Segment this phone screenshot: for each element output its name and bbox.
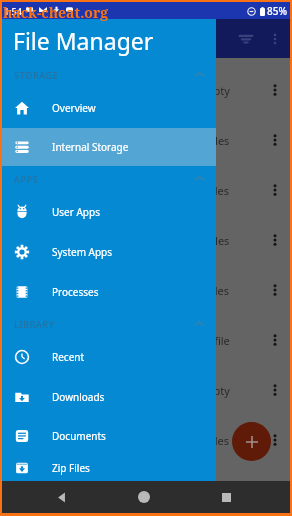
staticText: Internal Storage bbox=[52, 140, 129, 154]
button[interactable]: Alarms bbox=[2, 65, 290, 115]
button[interactable]: More options bbox=[262, 227, 288, 253]
button[interactable]: Internal Storage bbox=[2, 128, 216, 166]
staticText: Download bbox=[52, 282, 199, 298]
button[interactable]: STORAGE bbox=[2, 62, 216, 88]
button[interactable]: Add bbox=[232, 422, 271, 461]
staticText: Pictures bbox=[52, 432, 199, 448]
button[interactable]: Zip Files bbox=[2, 455, 216, 481]
button[interactable]: Overview bbox=[2, 88, 216, 128]
staticText: 22 files bbox=[193, 233, 230, 248]
button[interactable]: More options bbox=[262, 427, 288, 453]
staticText: Processes bbox=[52, 285, 99, 299]
staticText: Recent bbox=[52, 350, 85, 364]
staticText: 9 files bbox=[199, 283, 230, 298]
button[interactable]: Android bbox=[2, 115, 290, 165]
button[interactable]: More options bbox=[261, 25, 289, 53]
staticText: 13 files bbox=[193, 133, 230, 148]
staticText: Documents bbox=[52, 429, 106, 443]
staticText: Music bbox=[52, 382, 197, 398]
staticText: Zip Files bbox=[52, 461, 90, 475]
staticText: System Apps bbox=[52, 245, 113, 259]
staticText: Overview bbox=[52, 101, 96, 115]
staticText: 1:54 bbox=[4, 5, 22, 17]
button[interactable]: Home bbox=[127, 481, 161, 513]
button[interactable]: User Apps bbox=[2, 192, 216, 232]
button[interactable]: System Apps bbox=[2, 232, 216, 272]
button[interactable]: Music bbox=[2, 365, 290, 415]
staticText: hack-cheat.org bbox=[3, 3, 109, 22]
staticText: Android bbox=[52, 132, 193, 148]
button[interactable]: More options bbox=[262, 77, 288, 103]
button[interactable]: Back bbox=[45, 481, 79, 513]
button[interactable]: Documents bbox=[2, 215, 290, 265]
button[interactable]: Download bbox=[2, 265, 290, 315]
staticText: empty bbox=[197, 83, 230, 98]
staticText: empty bbox=[197, 383, 230, 398]
button[interactable]: More options bbox=[262, 127, 288, 153]
staticText: User Apps bbox=[52, 205, 100, 219]
button[interactable]: APPS bbox=[2, 166, 216, 192]
button[interactable]: DCIM bbox=[2, 165, 290, 215]
button[interactable]: Documents bbox=[2, 416, 216, 455]
button[interactable]: Processes bbox=[2, 272, 216, 311]
staticText: LIBRARY bbox=[14, 318, 55, 330]
staticText: 1 file bbox=[205, 333, 230, 348]
button[interactable]: Movies bbox=[2, 315, 290, 365]
staticText: APPS bbox=[14, 173, 39, 185]
button[interactable]: More options bbox=[262, 277, 288, 303]
button[interactable]: Recent bbox=[2, 337, 216, 377]
button[interactable]: LIBRARY bbox=[2, 311, 216, 337]
staticText: 85% bbox=[267, 4, 287, 18]
staticText: Downloads bbox=[52, 390, 105, 404]
button[interactable]: Recents bbox=[209, 481, 243, 513]
button[interactable]: More options bbox=[262, 327, 288, 353]
button[interactable]: More options bbox=[262, 177, 288, 203]
button[interactable]: Pictures bbox=[2, 415, 290, 465]
staticText: 6 files bbox=[199, 433, 230, 448]
staticText: File Manager bbox=[13, 25, 154, 56]
staticText: STORAGE bbox=[14, 69, 59, 81]
button[interactable]: Filter bbox=[231, 24, 261, 54]
button[interactable]: More options bbox=[262, 377, 288, 403]
staticText: 4 files bbox=[199, 183, 230, 198]
button[interactable]: Downloads bbox=[2, 377, 216, 416]
